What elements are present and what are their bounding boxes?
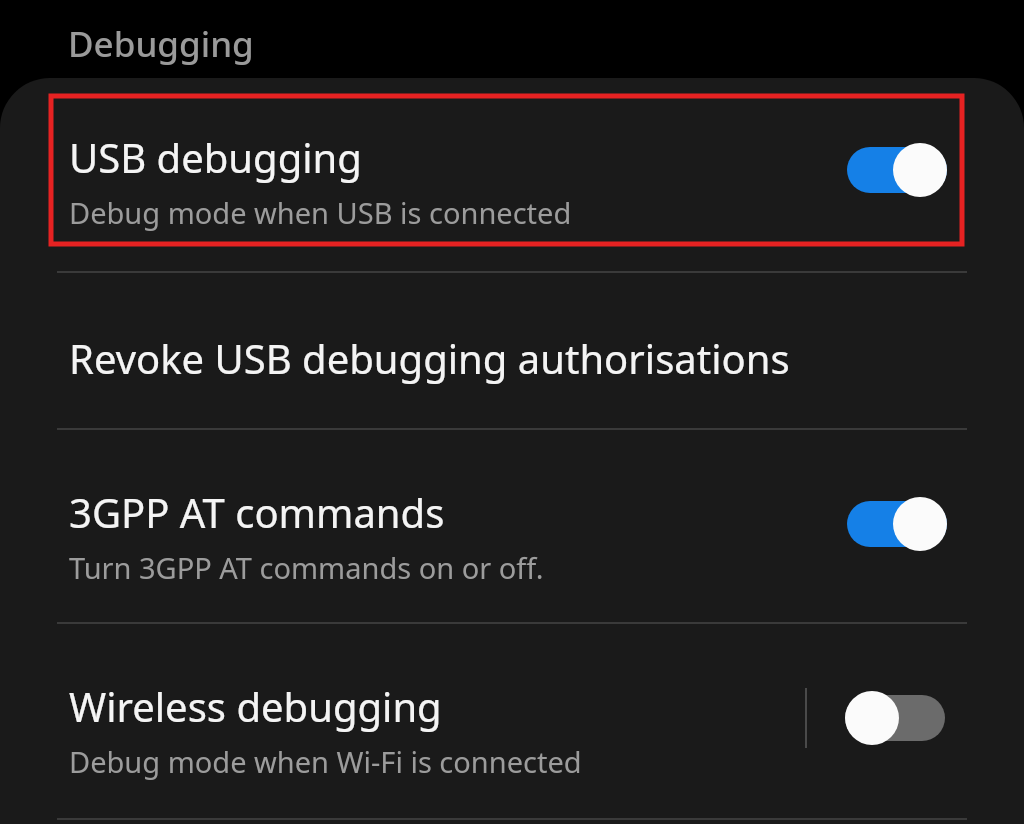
button[interactable]: 3GPP AT commands toggle (847, 495, 947, 553)
staticText: Turn 3GPP AT commands on or off. (69, 548, 544, 587)
button[interactable]: 3GPP AT commands (0, 448, 1024, 622)
staticText: Revoke USB debugging authorisations (69, 331, 790, 385)
staticText: Wireless debugging (69, 679, 442, 733)
staticText: Debug mode when USB is connected (69, 193, 572, 232)
button[interactable]: Wireless debugging (0, 624, 1024, 818)
button[interactable]: USB debugging toggle (847, 141, 947, 199)
staticText: Debug mode when Wi-Fi is connected (69, 742, 582, 781)
staticText: USB debugging (69, 130, 362, 184)
staticText: 3GPP AT commands (69, 485, 445, 539)
button[interactable]: USB debugging (0, 96, 1024, 271)
staticText: Debugging (68, 20, 254, 68)
button[interactable]: Revoke USB debugging authorisations (0, 273, 1024, 428)
button[interactable]: Wireless debugging toggle (845, 689, 945, 747)
